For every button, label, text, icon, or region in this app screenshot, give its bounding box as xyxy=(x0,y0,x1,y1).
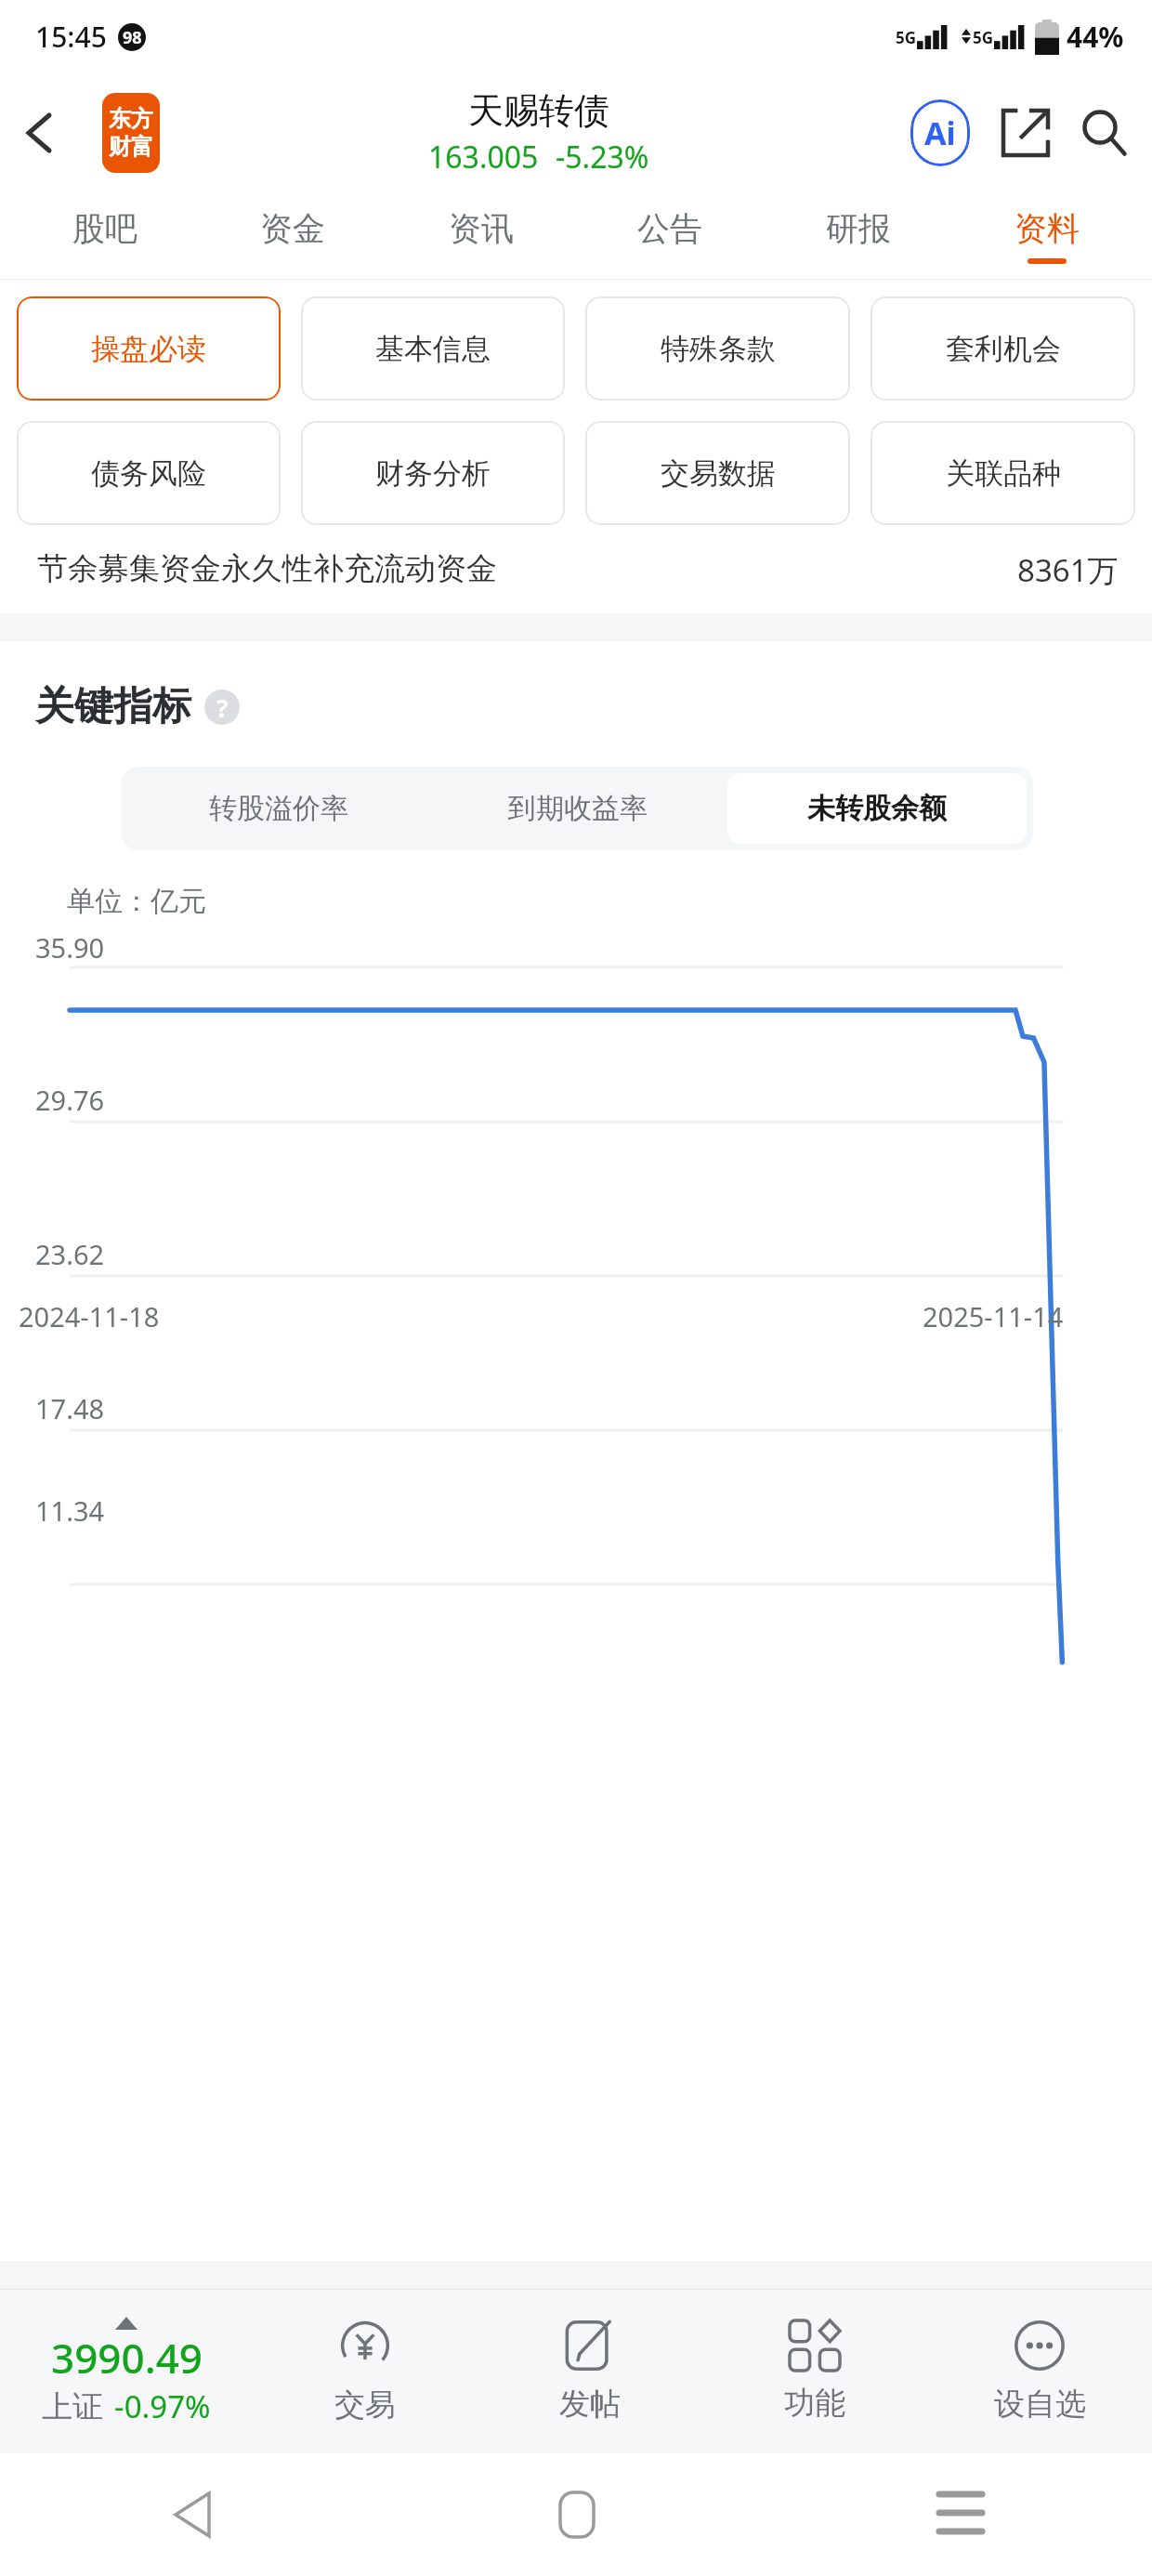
button[interactable]: Home xyxy=(385,2453,768,2576)
staticText: 29.76 xyxy=(35,1082,105,1118)
button[interactable]: 研报 xyxy=(764,193,952,279)
staticText: 2024-11-18 xyxy=(19,1298,160,1334)
staticText: 资讯 xyxy=(449,208,514,249)
staticText: Ai xyxy=(924,112,956,154)
button[interactable]: 交易 xyxy=(253,2290,478,2453)
staticText: 8361万 xyxy=(1017,549,1119,591)
staticText: 关键指标 xyxy=(35,682,191,731)
staticText: 资金 xyxy=(260,208,325,249)
button[interactable]: 套利机会 xyxy=(871,296,1135,401)
staticText: 163.005 xyxy=(428,137,539,177)
staticText: 东方 xyxy=(109,105,153,133)
staticText: 5G xyxy=(896,27,917,48)
staticText: 上证 xyxy=(42,2387,103,2426)
staticText: 5G xyxy=(973,27,994,48)
button[interactable]: 资金 xyxy=(199,193,386,279)
staticText: 2025-11-14 xyxy=(923,1298,1064,1334)
staticText: 15:45 xyxy=(35,18,107,56)
button[interactable]: 特殊条款 xyxy=(585,296,850,401)
button[interactable]: 基本信息 xyxy=(301,296,565,401)
staticText: 基本信息 xyxy=(375,331,491,367)
staticText: 财富 xyxy=(109,133,153,161)
button[interactable]: 到期收益率 xyxy=(428,773,727,844)
staticText: 17.48 xyxy=(35,1390,105,1426)
staticText: 单位：亿元 xyxy=(67,884,206,919)
button[interactable]: 3990.49 xyxy=(0,2290,253,2453)
button[interactable]: 股吧 xyxy=(11,193,199,279)
staticText: -0.97% xyxy=(114,2385,211,2427)
button[interactable]: Help xyxy=(204,690,240,725)
button[interactable]: Back xyxy=(0,2453,385,2576)
staticText: 财务分析 xyxy=(375,455,491,492)
button[interactable]: 发帖 xyxy=(478,2290,702,2453)
staticText: 研报 xyxy=(826,208,891,249)
staticText: 功能 xyxy=(784,2384,845,2423)
staticText: ? xyxy=(216,691,229,724)
staticText: 35.90 xyxy=(35,929,105,966)
button[interactable]: Back xyxy=(13,107,65,159)
staticText: 天赐转债 xyxy=(468,88,609,133)
button[interactable]: 财务分析 xyxy=(301,421,565,525)
staticText: 未转股余额 xyxy=(807,791,947,826)
staticText: 操盘必读 xyxy=(91,331,206,367)
button[interactable]: East Money logo xyxy=(102,93,160,173)
staticText: 23.62 xyxy=(35,1236,105,1272)
staticText: 公告 xyxy=(637,208,702,249)
staticText: 关联品种 xyxy=(946,455,1061,492)
staticText: 交易 xyxy=(334,2385,396,2425)
button[interactable]: 设自选 xyxy=(927,2290,1152,2453)
button[interactable]: Search xyxy=(1070,99,1137,166)
staticText: 设自选 xyxy=(994,2385,1086,2424)
staticText: 特殊条款 xyxy=(661,331,776,367)
button[interactable]: 转股溢价率 xyxy=(128,773,428,844)
staticText: 交易数据 xyxy=(661,455,776,492)
button[interactable]: 关联品种 xyxy=(871,421,1135,525)
staticText: 发帖 xyxy=(559,2385,621,2424)
button[interactable]: 交易数据 xyxy=(585,421,850,525)
staticText: 44% xyxy=(1067,18,1124,56)
button[interactable]: Recent apps xyxy=(768,2453,1152,2576)
staticText: 转股溢价率 xyxy=(209,791,348,826)
button[interactable]: 功能 xyxy=(702,2290,927,2453)
staticText: 节余募集资金永久性补充流动资金 xyxy=(37,549,650,588)
staticText: 债务风险 xyxy=(91,455,206,492)
button[interactable]: 债务风险 xyxy=(17,421,281,525)
button[interactable]: Share xyxy=(992,99,1059,166)
button[interactable]: 公告 xyxy=(575,193,764,279)
staticText: 98 xyxy=(123,26,142,49)
staticText: 11.34 xyxy=(35,1492,105,1529)
button[interactable]: AI assistant xyxy=(905,98,975,168)
staticText: -5.23% xyxy=(556,137,649,177)
button[interactable]: 未转股余额 xyxy=(727,773,1027,844)
staticText: 股吧 xyxy=(72,208,137,249)
button[interactable]: 资料 xyxy=(952,193,1141,279)
staticText: 资料 xyxy=(1015,208,1080,249)
staticText: 套利机会 xyxy=(946,331,1061,367)
staticText: 3990.49 xyxy=(51,2330,203,2385)
staticText: 到期收益率 xyxy=(508,791,648,826)
button[interactable]: 资讯 xyxy=(386,193,575,279)
button[interactable]: 操盘必读 xyxy=(17,296,281,401)
